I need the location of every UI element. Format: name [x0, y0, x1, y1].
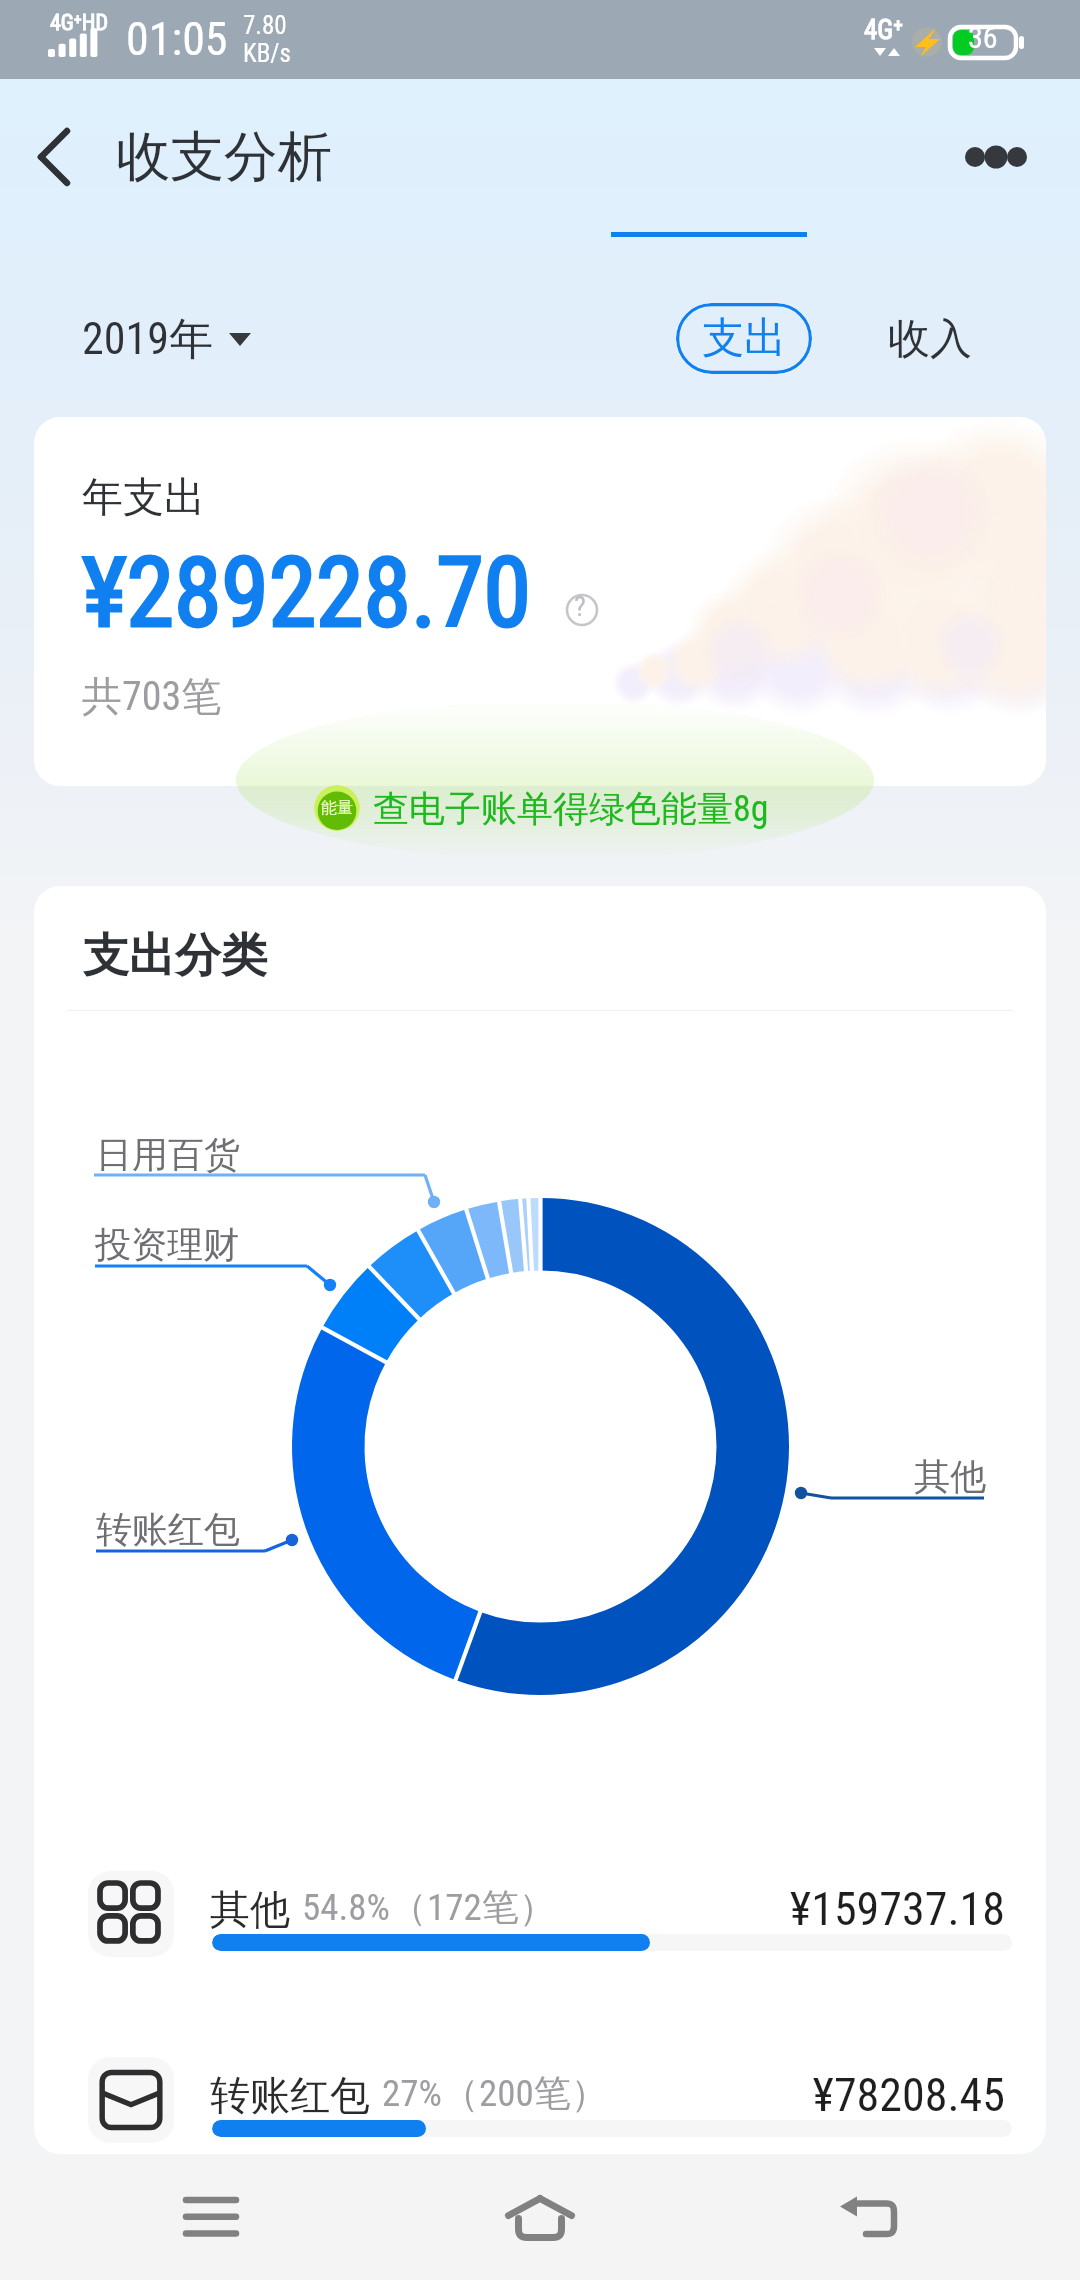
staticText: 收入 [888, 313, 972, 366]
staticText: 支出 [702, 312, 786, 365]
staticText: 日用百货 [96, 1132, 240, 1177]
staticText: 共703笔 [82, 671, 222, 721]
staticText: 查电子账单得绿色能量8g [373, 786, 769, 831]
staticText: 其他 [914, 1454, 986, 1499]
staticText: 投资理财 [95, 1222, 239, 1267]
button[interactable]: Back [823, 2172, 913, 2262]
staticText: KB/s [243, 39, 291, 68]
button[interactable]: 年支出 [34, 417, 1046, 786]
staticText: 7.80 [243, 11, 287, 40]
staticText: ¥289228.70 [82, 537, 531, 650]
button[interactable]: 能量 [314, 785, 769, 831]
staticText: 能量 [321, 798, 353, 818]
staticText: 36 [968, 20, 998, 55]
other: Back [20, 116, 82, 198]
staticText: 年支出 [82, 472, 205, 524]
button[interactable]: 2019年 [82, 302, 251, 376]
button[interactable]: More options [950, 112, 1042, 202]
staticText: 2019年 [82, 312, 213, 367]
button[interactable]: Recent apps [166, 2172, 256, 2262]
staticText: 转账红包 [96, 1507, 240, 1552]
button[interactable]: 收入 [878, 304, 982, 374]
button[interactable]: 其他 [34, 1871, 1046, 2051]
button[interactable]: 支出 [676, 303, 812, 374]
staticText: ? [574, 590, 586, 623]
staticText: ¥78208.45 [34, 2068, 1005, 2122]
staticText: 收支分析 [116, 123, 332, 191]
button[interactable]: Back [20, 116, 332, 198]
staticText: 4G⁺HD [50, 10, 108, 36]
button[interactable]: Home [495, 2172, 585, 2262]
staticText: ¥159737.18 [34, 1882, 1005, 1936]
staticText: 4G⁺ [864, 14, 904, 46]
staticText: 转账红包 [210, 2070, 370, 2120]
staticText: 27%（200笔） [382, 2070, 608, 2117]
staticText: 支出分类 [83, 927, 267, 985]
staticText: 其他 [210, 1884, 290, 1934]
staticText: 54.8%（172笔） [302, 1884, 556, 1931]
button[interactable]: 转账红包 [34, 2057, 1046, 2154]
staticText: 01:05 [126, 12, 228, 66]
